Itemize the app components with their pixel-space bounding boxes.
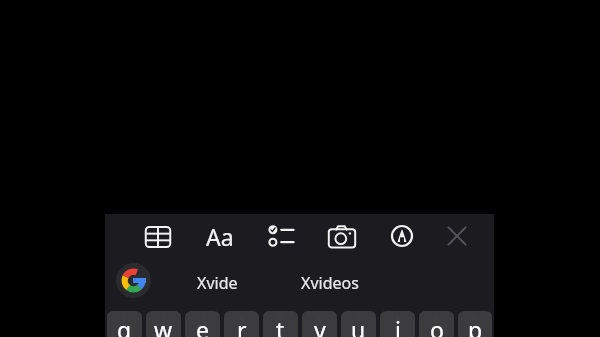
staticText: w [154, 314, 173, 337]
staticText: y [314, 314, 326, 337]
button[interactable]: 6 [302, 311, 337, 337]
staticText: Xvideos [301, 272, 359, 294]
button[interactable]: Clipboard [140, 219, 176, 255]
button[interactable]: Camera [324, 219, 360, 255]
button[interactable]: Xvide [175, 258, 275, 308]
staticText: r [237, 314, 247, 337]
staticText: Aa [206, 221, 234, 252]
button[interactable]: 8 [380, 311, 415, 337]
staticText: t [276, 314, 285, 337]
staticText: e [196, 314, 209, 337]
button[interactable]: Close [439, 218, 475, 254]
staticText: 5 [278, 313, 284, 325]
staticText: o [430, 314, 444, 337]
button[interactable]: Checklist [263, 218, 299, 254]
staticText: i [395, 314, 401, 337]
staticText: u [351, 314, 366, 337]
staticText: q [117, 314, 132, 337]
button[interactable]: Google [116, 263, 151, 298]
button[interactable]: 4 [224, 311, 259, 337]
button[interactable]: 1 [107, 311, 142, 337]
button[interactable]: 0 [458, 311, 492, 337]
button[interactable]: 2 [146, 311, 181, 337]
button[interactable]: Aa [198, 218, 242, 254]
button[interactable]: Xvideos [279, 258, 379, 308]
button[interactable]: Assistant [384, 218, 420, 254]
staticText: 8 [395, 313, 401, 325]
staticText: p [468, 314, 483, 337]
button[interactable]: 7 [341, 311, 376, 337]
button[interactable]: 3 [185, 311, 220, 337]
button[interactable]: 5 [263, 311, 298, 337]
button[interactable]: 9 [419, 311, 454, 337]
staticText: Xvide [197, 272, 238, 294]
